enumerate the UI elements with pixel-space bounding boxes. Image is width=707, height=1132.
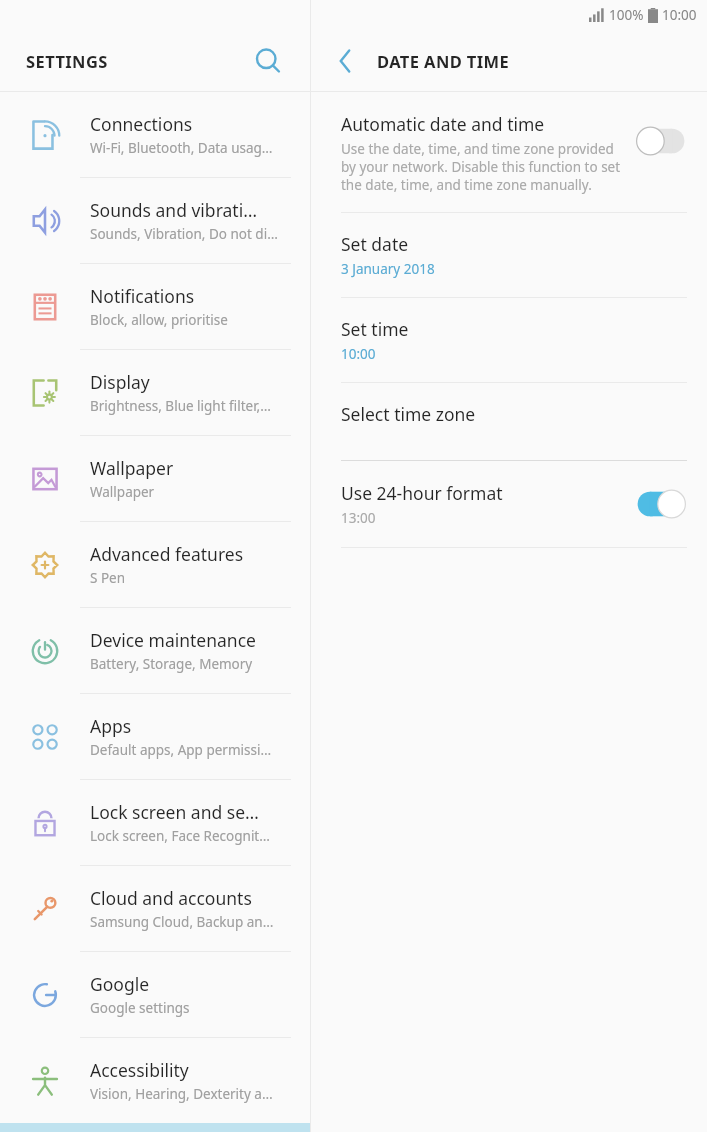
staticText: 10:00 (341, 345, 376, 363)
button[interactable]: Set time (311, 298, 707, 382)
staticText: Samsung Cloud, Backup an… (90, 913, 274, 931)
staticText: Google (90, 972, 150, 996)
button[interactable]: Wallpaper (0, 436, 310, 522)
staticText: Vision, Hearing, Dexterity a… (90, 1085, 273, 1103)
staticText: Advanced features (90, 542, 244, 566)
staticText: Display (90, 370, 150, 394)
button[interactable]: Google (0, 952, 310, 1038)
staticText: Lock screen, Face Recognit… (90, 827, 270, 845)
staticText: 10:00 (662, 6, 697, 24)
staticText: Use 24-hour format (341, 481, 503, 505)
staticText: Wi-Fi, Bluetooth, Data usag… (90, 139, 273, 157)
staticText: Use the date, time, and time zone provid… (341, 140, 621, 194)
staticText: Select time zone (341, 402, 476, 426)
button[interactable]: Set date (311, 213, 707, 297)
staticText: SETTINGS (26, 50, 108, 72)
button[interactable]: Cloud and accounts (0, 866, 310, 952)
button[interactable]: Apps (0, 694, 310, 780)
button[interactable]: Notifications (0, 264, 310, 350)
button[interactable]: Advanced features (0, 522, 310, 608)
staticText: Set time (341, 317, 409, 341)
button[interactable]: Lock screen and se… (0, 780, 310, 866)
staticText: Brightness, Blue light filter,… (90, 397, 271, 415)
button[interactable]: Off (635, 126, 687, 156)
staticText: Sounds and vibrati… (90, 198, 258, 222)
button[interactable]: Connections (0, 92, 310, 178)
button[interactable]: Back (323, 39, 367, 83)
button[interactable]: Sounds and vibrati… (0, 178, 310, 264)
staticText: Set date (341, 232, 409, 256)
staticText: Default apps, App permissi… (90, 741, 272, 759)
staticText: 13:00 (341, 509, 376, 527)
staticText: Wallpaper (90, 483, 155, 501)
staticText: Device maintenance (90, 628, 256, 652)
staticText: Lock screen and se… (90, 800, 259, 824)
staticText: Connections (90, 112, 193, 136)
staticText: Block, allow, prioritise (90, 311, 228, 329)
staticText: Google settings (90, 999, 190, 1017)
button[interactable]: Display (0, 350, 310, 436)
button[interactable]: Accessibility (0, 1038, 310, 1123)
button[interactable]: Search (246, 39, 290, 83)
button[interactable]: On (635, 489, 687, 519)
staticText: Wallpaper (90, 456, 174, 480)
staticText: 3 January 2018 (341, 260, 435, 278)
button[interactable]: Use 24-hour format (311, 461, 707, 547)
staticText: Apps (90, 714, 132, 738)
staticText: Accessibility (90, 1058, 189, 1082)
staticText: DATE AND TIME (377, 50, 510, 72)
staticText: Cloud and accounts (90, 886, 252, 910)
staticText: Battery, Storage, Memory (90, 655, 253, 673)
staticText: Sounds, Vibration, Do not di… (90, 225, 278, 243)
staticText: 100% (609, 6, 644, 24)
staticText: Notifications (90, 284, 195, 308)
button[interactable]: Automatic date and time (311, 92, 707, 212)
staticText: S Pen (90, 569, 126, 587)
button[interactable]: Device maintenance (0, 608, 310, 694)
button[interactable]: Select time zone (311, 383, 707, 460)
staticText: Automatic date and time (341, 112, 545, 136)
